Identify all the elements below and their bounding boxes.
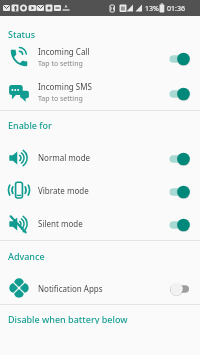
button[interactable]: Notification Apps <box>0 272 200 304</box>
staticText: Enable for <box>8 119 52 130</box>
staticText: Tap to setting <box>38 59 83 69</box>
button[interactable]: Incoming Call <box>0 40 200 75</box>
staticText: Incoming Call <box>38 46 90 57</box>
button[interactable] <box>167 280 191 296</box>
button[interactable]: Vibrate mode <box>0 174 200 207</box>
staticText: Notification Apps <box>38 283 103 294</box>
staticText: Disable when battery below <box>8 313 128 324</box>
button[interactable] <box>167 150 191 166</box>
staticText: Silent mode <box>38 218 83 229</box>
staticText: 01:36 <box>167 4 185 14</box>
staticText: Status <box>8 28 36 40</box>
staticText: Tap to setting <box>38 94 83 104</box>
staticText: Normal mode <box>38 152 91 163</box>
button[interactable]: Silent mode <box>0 207 200 240</box>
button[interactable] <box>167 183 191 199</box>
button[interactable]: Normal mode <box>0 141 200 174</box>
button[interactable] <box>167 216 191 232</box>
button[interactable]: Incoming SMS <box>0 75 200 110</box>
button[interactable] <box>167 85 191 101</box>
staticText: Vibrate mode <box>38 185 89 196</box>
staticText: Advance <box>8 250 45 261</box>
staticText: Incoming SMS <box>38 81 92 92</box>
staticText: 13% <box>145 4 159 14</box>
button[interactable] <box>167 50 191 66</box>
